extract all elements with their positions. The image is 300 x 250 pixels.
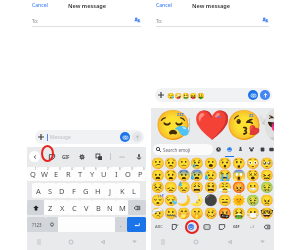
button[interactable]: Hide keyboard — [129, 236, 140, 247]
button[interactable]: 😢 — [190, 157, 204, 169]
button[interactable]: 😲 — [232, 157, 246, 169]
button[interactable]: Back — [97, 236, 108, 247]
button[interactable]: Backspace — [259, 220, 274, 233]
button[interactable]: 😤 — [218, 181, 232, 194]
button[interactable]: 😩 — [190, 181, 204, 194]
button[interactable]: Emoticons — [244, 220, 259, 233]
button[interactable]: U — [98, 167, 110, 181]
button[interactable]: 😮 — [204, 157, 218, 169]
button[interactable]: E — [50, 167, 62, 181]
button[interactable]: Food — [257, 142, 268, 157]
button[interactable]: ⚫ — [204, 194, 218, 207]
button[interactable]: Menu — [33, 236, 44, 247]
button[interactable]: ❤️ — [194, 108, 224, 142]
button[interactable]: Backspace — [128, 200, 146, 215]
button[interactable]: 🤬 — [218, 207, 232, 220]
button[interactable]: 😕 — [151, 157, 164, 169]
button[interactable]: P — [134, 167, 146, 181]
button[interactable]: Voice input — [133, 151, 144, 162]
button[interactable]: Send — [260, 90, 270, 100]
button[interactable]: F — [68, 183, 80, 198]
button[interactable]: 🤢 — [246, 194, 260, 207]
button[interactable]: 🙁 — [177, 157, 190, 169]
button[interactable]: Keyboard — [199, 220, 214, 233]
button[interactable]: Shift — [27, 200, 44, 215]
button[interactable]: 😓 — [177, 181, 190, 194]
button[interactable]: D — [56, 183, 68, 198]
button[interactable]: Home — [65, 236, 76, 247]
button[interactable]: Add attachment — [35, 131, 47, 143]
button[interactable]: Cancel — [156, 2, 172, 9]
button[interactable]: 🌙 — [177, 194, 190, 207]
button[interactable]: Home — [190, 236, 201, 247]
button[interactable]: Animals — [246, 142, 257, 157]
button[interactable]: 😷 — [246, 207, 260, 220]
button[interactable]: Add attachment — [155, 89, 167, 101]
button[interactable]: Menu — [157, 236, 168, 247]
button[interactable]: Emoji key — [46, 217, 58, 232]
button[interactable]: 😫 — [204, 181, 218, 194]
button[interactable]: 😪 — [155, 108, 185, 142]
button[interactable]: Z — [44, 200, 56, 215]
button[interactable]: Y — [86, 167, 98, 181]
button[interactable]: 😟 — [164, 157, 177, 169]
button[interactable]: Smileys — [224, 142, 235, 157]
button[interactable]: T — [74, 167, 86, 181]
button[interactable]: 😱 — [232, 169, 246, 181]
button[interactable]: Camera — [120, 132, 130, 142]
button[interactable]: ?123 — [27, 217, 46, 232]
button[interactable]: Hide keyboard — [257, 236, 268, 247]
button[interactable]: 🤢 — [260, 181, 274, 194]
button[interactable]: L — [128, 183, 140, 198]
button[interactable]: Recent — [213, 142, 224, 157]
button[interactable]: ABC — [151, 220, 167, 233]
button[interactable]: Search emoji — [153, 144, 213, 155]
button[interactable]: GIF — [62, 154, 70, 160]
button[interactable]: 😯 — [218, 157, 232, 169]
button[interactable]: K — [116, 183, 128, 198]
button[interactable]: N — [104, 200, 116, 215]
button[interactable]: 🌞 — [232, 194, 246, 207]
button[interactable]: Emoji — [183, 220, 199, 233]
button[interactable]: 😠 — [260, 194, 274, 207]
button[interactable]: 😳 — [246, 157, 260, 169]
button[interactable]: 😭 — [218, 169, 232, 181]
button[interactable]: Stickers — [167, 220, 183, 233]
button[interactable]: Add people — [131, 17, 142, 24]
button[interactable]: 😪 — [164, 194, 177, 207]
button[interactable]: . — [115, 217, 127, 232]
button[interactable]: Translate — [93, 151, 104, 162]
button[interactable]: 😑 — [218, 194, 232, 207]
button[interactable]: 😦 — [151, 169, 164, 181]
button[interactable]: Back — [29, 151, 40, 162]
button[interactable]: B — [92, 200, 104, 215]
button[interactable]: 🤫 — [190, 207, 204, 220]
button[interactable]: G — [80, 183, 92, 198]
button[interactable]: M — [116, 200, 128, 215]
button[interactable]: 😵 — [246, 169, 260, 181]
button[interactable]: 😘 — [226, 108, 256, 142]
button[interactable]: 😞 — [164, 181, 177, 194]
button[interactable]: Enter — [127, 217, 146, 232]
button[interactable]: 😰 — [190, 169, 204, 181]
button[interactable]: Add people — [259, 17, 270, 24]
button[interactable]: 🤓 — [260, 207, 274, 220]
button[interactable]: 😴 — [151, 194, 164, 207]
button[interactable]: Stickers — [46, 151, 57, 162]
button[interactable]: 😥 — [204, 169, 218, 181]
button[interactable]: J — [104, 183, 116, 198]
button[interactable]: 🥴 — [204, 207, 218, 220]
button[interactable]: Cancel — [32, 2, 48, 9]
button[interactable]: 😡 — [232, 181, 246, 194]
button[interactable]: 👻 — [258, 108, 274, 142]
button[interactable]: 🤐 — [164, 207, 177, 220]
button[interactable]: 🤮 — [232, 207, 246, 220]
button[interactable]: More — [116, 151, 127, 162]
button[interactable]: 😬 — [246, 181, 260, 194]
button[interactable]: 🤕 — [151, 207, 164, 220]
button[interactable]: Travel — [268, 142, 274, 157]
button[interactable]: 🤭 — [177, 207, 190, 220]
button[interactable]: Q — [27, 167, 38, 181]
button[interactable]: A — [32, 183, 44, 198]
